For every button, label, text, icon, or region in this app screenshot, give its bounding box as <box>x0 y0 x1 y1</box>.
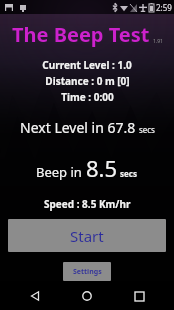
button[interactable]: Settings <box>63 262 111 281</box>
staticText: secs <box>118 168 138 179</box>
staticText: Time : 0:00 <box>61 90 114 104</box>
staticText: Current Level : 1.0 <box>42 58 132 72</box>
button[interactable]: Recent apps <box>122 282 156 310</box>
button[interactable]: Home <box>70 282 104 310</box>
staticText: Distance : 0 m [0] <box>45 74 130 88</box>
button[interactable]: Start <box>8 219 166 252</box>
staticText: 1.91 <box>153 38 163 45</box>
staticText: Start <box>70 226 104 246</box>
button[interactable]: Back <box>18 282 52 310</box>
staticText: Beep in <box>36 163 86 181</box>
staticText: Settings <box>73 267 102 277</box>
staticText: Next Level in 67.8 secs <box>20 118 155 137</box>
staticText: 8.5 <box>86 153 118 183</box>
staticText: 2:59 <box>156 2 172 13</box>
staticText: Speed : 8.5 Km/hr <box>44 197 131 211</box>
staticText: The Beep Test <box>12 21 150 48</box>
